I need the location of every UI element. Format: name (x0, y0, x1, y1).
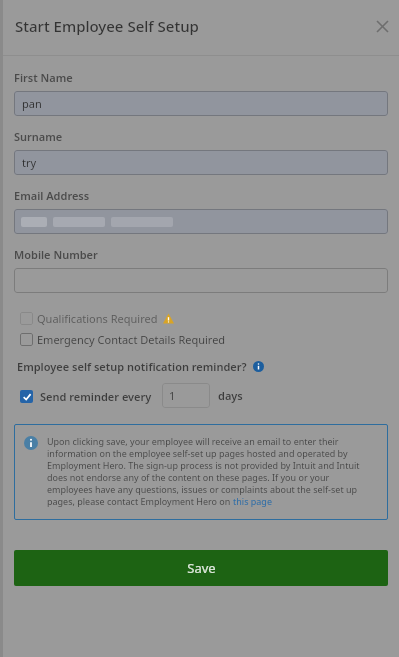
staticText: Surname (14, 129, 63, 144)
staticText: try (22, 155, 37, 170)
staticText: Emergency Contact Details Required (37, 332, 226, 347)
button[interactable]: pan (14, 91, 388, 116)
staticText: Start Employee Self Setup (15, 16, 199, 36)
button[interactable]: Reminder interval (162, 383, 210, 408)
staticText: Email Address (14, 188, 90, 203)
staticText: 1 (169, 388, 176, 403)
staticText: Send reminder every (40, 389, 152, 404)
staticText: information on the employee self-set up … (47, 447, 348, 459)
staticText: Upon clicking save, your employee will r… (47, 435, 339, 447)
staticText: pages, please contact Employment Hero on (47, 495, 233, 507)
staticText: Qualifications Required (37, 311, 158, 326)
staticText: Employee self setup notification reminde… (17, 359, 247, 374)
staticText: First Name (14, 70, 73, 85)
button[interactable]: this page (233, 495, 272, 507)
staticText: Save (187, 559, 216, 577)
staticText: employees have any questions, issues or … (47, 483, 358, 495)
button[interactable]: More information (252, 360, 265, 373)
button[interactable]: Send reminder every (17, 387, 152, 405)
staticText: pan (22, 96, 42, 111)
staticText: Employment Hero. The sign-up process is … (47, 459, 360, 471)
staticText: does not endorse any of the content on t… (47, 471, 330, 483)
button[interactable]: Emergency Contact Details Required (14, 330, 388, 348)
button[interactable]: Qualifications Required (14, 309, 388, 327)
staticText: Mobile Number (14, 247, 98, 262)
button[interactable]: try (14, 150, 388, 175)
button[interactable]: Mobile Number (14, 268, 388, 293)
button[interactable]: Close (371, 15, 393, 37)
button[interactable]: Email Address (14, 209, 388, 234)
button[interactable]: Save (14, 550, 388, 586)
staticText: days (218, 388, 243, 403)
